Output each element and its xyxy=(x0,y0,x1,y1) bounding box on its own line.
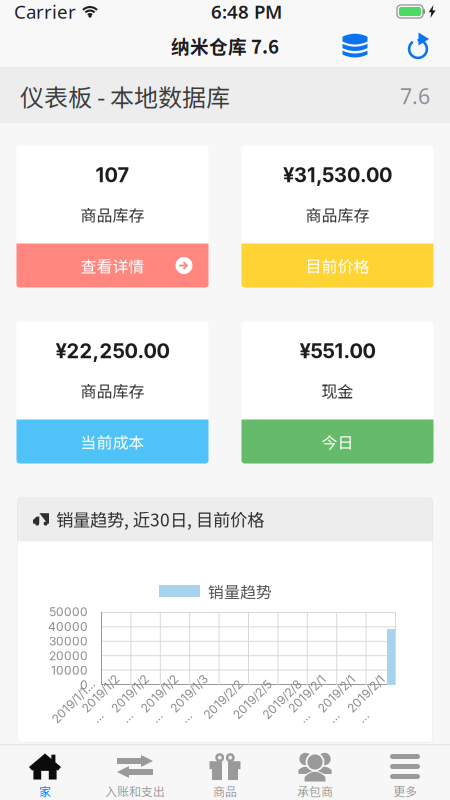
staticText: 销量趋势, 近30日, 目前价格 xyxy=(56,506,264,532)
staticText: ¥551.00 xyxy=(299,339,375,363)
staticText: 50000 xyxy=(49,605,88,619)
staticText: 7.6 xyxy=(400,82,430,110)
button[interactable]: ¥22,250.00 xyxy=(16,321,208,463)
button[interactable]: Database xyxy=(333,23,377,67)
staticText: 2019/2/1… xyxy=(319,687,366,716)
staticText: 2019/2/1… xyxy=(349,687,396,716)
staticText: 6:48 PM xyxy=(211,0,282,24)
staticText: 更多 xyxy=(393,782,417,800)
staticText: 今日 xyxy=(321,430,353,453)
staticText: 0 xyxy=(80,678,88,692)
staticText: 商品 xyxy=(213,782,237,800)
staticText: ¥22,250.00 xyxy=(55,339,169,363)
staticText: 仪表板 - 本地数据库 xyxy=(20,79,230,113)
staticText: 2019/1/2… xyxy=(113,687,160,716)
staticText: 现金 xyxy=(321,379,353,402)
staticText: 20000 xyxy=(49,648,88,663)
staticText: 2019/2/8 xyxy=(258,695,307,709)
staticText: 商品库存 xyxy=(80,379,144,402)
staticText: 纳米仓库 7.6 xyxy=(171,32,279,59)
staticText: 查看详情 xyxy=(80,254,144,277)
staticText: 10000 xyxy=(51,663,88,678)
staticText: 2019/1/2… xyxy=(83,687,130,716)
staticText: 商品库存 xyxy=(305,203,369,226)
button[interactable]: ¥31,530.00 xyxy=(241,145,433,287)
button[interactable]: ¥551.00 xyxy=(241,321,433,463)
button[interactable]: Refresh xyxy=(397,23,441,67)
staticText: 2019/2/2 xyxy=(199,695,248,709)
staticText: 40000 xyxy=(48,619,88,634)
staticText: Carrier xyxy=(14,0,76,24)
button[interactable]: 承包商 xyxy=(270,745,360,800)
staticText: 30000 xyxy=(49,634,88,648)
staticText: 承包商 xyxy=(297,782,333,800)
staticText: 2019/2/5 xyxy=(229,695,278,709)
button[interactable]: 家 xyxy=(0,745,90,800)
staticText: 目前价格 xyxy=(305,254,369,277)
staticText: 当前成本 xyxy=(80,430,144,453)
staticText: 2019/1/3… xyxy=(172,687,219,716)
staticText: 销量趋势 xyxy=(208,579,272,603)
button[interactable]: 更多 xyxy=(360,745,450,800)
button[interactable]: 入账和支出 xyxy=(90,745,180,800)
button[interactable]: 107 xyxy=(16,145,208,287)
staticText: 2019/1/2… xyxy=(142,687,189,716)
staticText: 2019/2/1… xyxy=(290,687,337,716)
staticText: 商品库存 xyxy=(80,203,144,226)
button[interactable]: 商品 xyxy=(180,745,270,800)
staticText: 2019/1/1… xyxy=(46,695,101,709)
staticText: ¥31,530.00 xyxy=(283,163,392,187)
staticText: 入账和支出 xyxy=(105,782,165,800)
staticText: 107 xyxy=(95,163,129,187)
staticText: 家 xyxy=(39,782,51,800)
